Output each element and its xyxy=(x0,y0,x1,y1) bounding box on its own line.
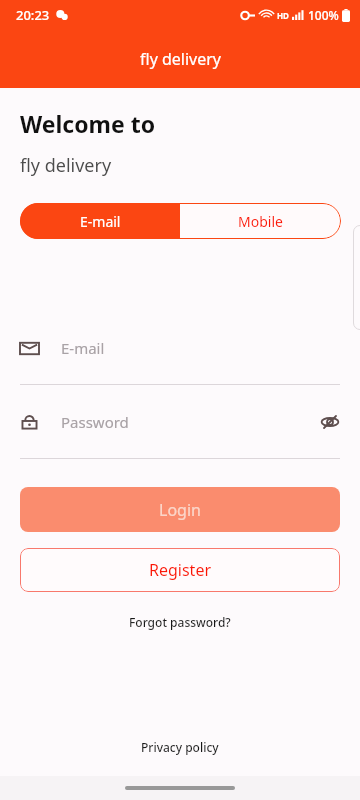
staticText: 20:23 xyxy=(16,6,50,24)
staticText: Login xyxy=(159,499,201,521)
staticText: Forgot password? xyxy=(129,614,231,630)
button[interactable]: E-mail xyxy=(20,334,340,362)
staticText: Welcome to xyxy=(20,108,156,139)
staticText: Privacy policy xyxy=(141,739,219,755)
staticText: fly delivery xyxy=(20,153,112,178)
staticText: Register xyxy=(149,559,212,581)
button[interactable]: Privacy policy xyxy=(127,734,233,760)
button[interactable]: Forgot password? xyxy=(115,609,245,635)
button[interactable]: Register xyxy=(20,548,340,592)
staticText: HD xyxy=(277,10,289,21)
other: E-mail xyxy=(20,339,39,358)
other: Password xyxy=(20,413,39,432)
button[interactable]: Password xyxy=(20,408,340,436)
staticText: 100% xyxy=(308,7,339,23)
staticText: fly delivery xyxy=(140,48,221,70)
other: Show password xyxy=(320,412,340,432)
staticText: E-mail xyxy=(80,212,121,231)
button[interactable]: Login xyxy=(20,487,340,532)
button[interactable]: E-mail xyxy=(20,203,180,239)
button[interactable]: Mobile xyxy=(180,203,341,239)
staticText: Mobile xyxy=(238,212,283,231)
staticText: Password xyxy=(61,412,129,432)
staticText: E-mail xyxy=(61,338,105,358)
